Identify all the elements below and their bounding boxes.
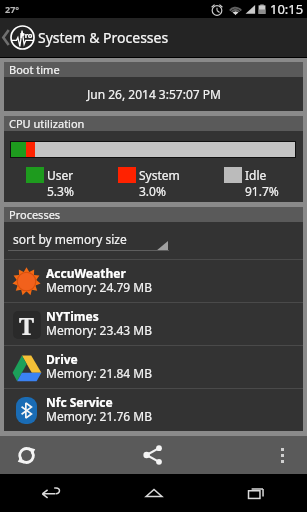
button[interactable]: AccuWeather bbox=[4, 260, 303, 302]
button[interactable]: Share bbox=[127, 436, 179, 474]
staticText: 91.7% bbox=[245, 183, 279, 199]
staticText: AccuWeather bbox=[46, 265, 126, 281]
staticText: 10:15 bbox=[270, 0, 304, 18]
button[interactable]: Drive bbox=[4, 346, 303, 388]
staticText: NYTimes bbox=[46, 308, 99, 324]
button[interactable]: Back bbox=[0, 474, 103, 512]
staticText: Memory: 21.76 MB bbox=[46, 408, 153, 424]
staticText: System & Processes bbox=[38, 28, 169, 47]
staticText: 5.3% bbox=[47, 183, 74, 199]
staticText: sort by memory size bbox=[13, 231, 127, 247]
staticText: Memory: 23.43 MB bbox=[46, 322, 153, 338]
staticText: Boot time bbox=[9, 62, 60, 77]
staticText: CPU utilization bbox=[9, 116, 85, 131]
button[interactable]: T bbox=[4, 303, 303, 345]
button[interactable]: sort by memory size bbox=[4, 222, 303, 259]
staticText: T bbox=[19, 311, 35, 338]
staticText: Idle bbox=[245, 167, 267, 183]
staticText: Pro bbox=[20, 30, 33, 40]
staticText: Drive bbox=[46, 351, 78, 367]
button[interactable]: Home bbox=[103, 474, 205, 512]
button[interactable]: More options bbox=[179, 436, 307, 474]
staticText: 27° bbox=[5, 3, 20, 15]
staticText: System bbox=[139, 167, 180, 183]
staticText: Memory: 24.79 MB bbox=[46, 279, 153, 295]
staticText: 3.0% bbox=[139, 183, 166, 199]
button[interactable]: Nfc Service bbox=[4, 389, 303, 431]
staticText: Memory: 21.84 MB bbox=[46, 365, 153, 381]
staticText: Nfc Service bbox=[46, 394, 113, 410]
button[interactable]: Navigate up bbox=[0, 18, 40, 57]
staticText: Processes bbox=[9, 207, 61, 222]
button[interactable]: Recents bbox=[205, 474, 307, 512]
staticText: Jun 26, 2014 3:57:07 PM bbox=[87, 86, 221, 102]
staticText: User bbox=[47, 167, 74, 183]
button[interactable]: Refresh bbox=[0, 436, 52, 474]
